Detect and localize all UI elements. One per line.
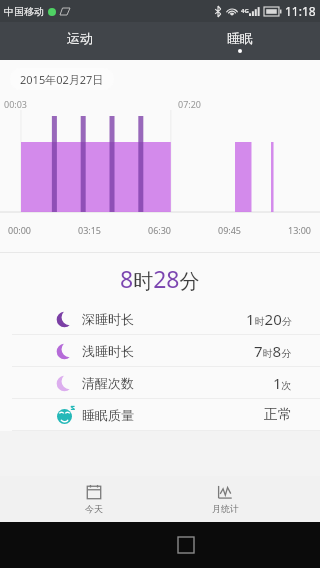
staticText: 浅睡时长 [82,343,134,359]
button[interactable]: 睡眠质量 [0,399,320,430]
button[interactable]: 今天 [64,480,124,518]
button[interactable]: 清醒次数 [0,367,320,398]
staticText: 13:00 [288,224,312,236]
staticText: 8时28分 [120,263,200,294]
staticText: 2015年02月27日 [20,72,104,87]
staticText: 11:18 [285,3,316,19]
staticText: 09:45 [218,224,242,236]
staticText: 清醒次数 [82,375,134,391]
button[interactable]: 月统计 [195,480,255,518]
button[interactable]: 2015年02月27日 [10,68,114,90]
staticText: 03:15 [78,224,102,236]
staticText: 深睡时长 [82,311,134,327]
other: 月统计 [217,484,233,500]
other: 今天 [86,484,102,500]
staticText: 今天 [85,503,103,514]
button[interactable]: 睡眠 [160,22,320,60]
button[interactable]: 运动 [0,22,160,60]
staticText: 4G [241,7,249,15]
staticText: 00:03 [4,98,28,110]
staticText: 月统计 [212,503,239,514]
staticText: 运动 [67,30,93,46]
staticText: 7时8分 [254,341,292,361]
staticText: 睡眠 [227,30,253,46]
staticText: 07:20 [178,98,202,110]
staticText: 1时20分 [246,309,292,329]
staticText: 1次 [273,373,292,393]
staticText: 00:00 [8,224,32,236]
button[interactable]: 浅睡时长 [0,335,320,366]
staticText: 06:30 [148,224,172,236]
staticText: 睡眠质量 [82,407,134,423]
button[interactable]: 深睡时长 [0,303,320,334]
button[interactable]: Recents [178,537,194,553]
staticText: 中国移动 [4,5,44,18]
staticText: 正常 [264,406,292,424]
